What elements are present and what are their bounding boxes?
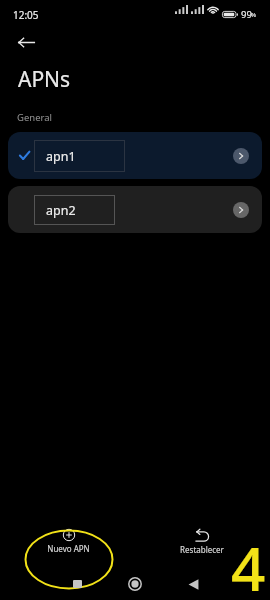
- staticText: General: [17, 111, 53, 124]
- staticText: Restablecer: [180, 544, 224, 555]
- button[interactable]: Nuevo APN: [38, 529, 99, 554]
- button[interactable]: Home: [115, 568, 155, 596]
- staticText: %: [251, 11, 256, 19]
- button[interactable]: apn1: [8, 132, 262, 179]
- staticText: apn1: [46, 148, 76, 165]
- button[interactable]: apn2: [8, 186, 262, 233]
- staticText: 12:05: [13, 8, 39, 22]
- button[interactable]: Open apn2 settings: [233, 202, 249, 218]
- staticText: 99: [241, 8, 252, 21]
- staticText: apn2: [46, 202, 76, 219]
- staticText: Nuevo APN: [47, 543, 90, 554]
- button[interactable]: Back: [13, 29, 40, 56]
- staticText: APNs: [18, 65, 71, 94]
- button[interactable]: Restablecer: [171, 529, 232, 555]
- button[interactable]: Open apn1 settings: [233, 148, 249, 164]
- button[interactable]: Back: [173, 568, 213, 596]
- button[interactable]: Recents: [56, 568, 96, 596]
- staticText: 4: [231, 527, 266, 600]
